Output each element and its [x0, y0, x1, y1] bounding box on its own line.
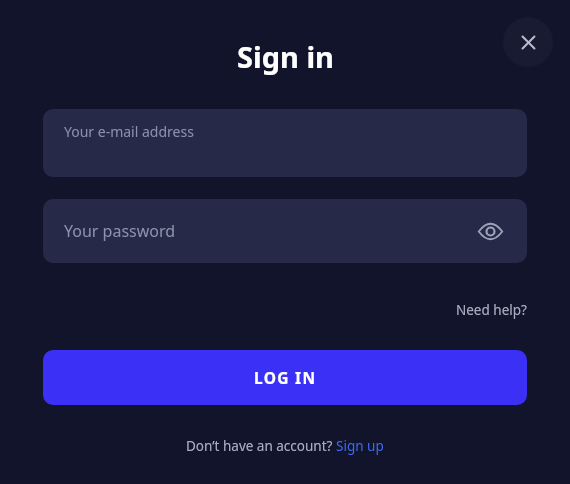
button[interactable]: Close [503, 17, 553, 67]
button[interactable]: Need help? [456, 301, 527, 319]
staticText: Your password [64, 220, 176, 242]
button[interactable]: Sign up [336, 437, 384, 455]
button[interactable]: Show password [474, 215, 506, 247]
staticText: Don’t have an account? [186, 437, 336, 455]
button[interactable]: Your e-mail address [43, 109, 527, 177]
button[interactable]: LOG IN [43, 350, 527, 405]
staticText: Your e-mail address [64, 122, 194, 141]
staticText: LOG IN [254, 367, 317, 388]
staticText: Sign in [237, 37, 334, 76]
button[interactable]: Your password [43, 199, 527, 263]
staticText: Sign up [336, 437, 384, 455]
staticText: Need help? [456, 301, 527, 319]
